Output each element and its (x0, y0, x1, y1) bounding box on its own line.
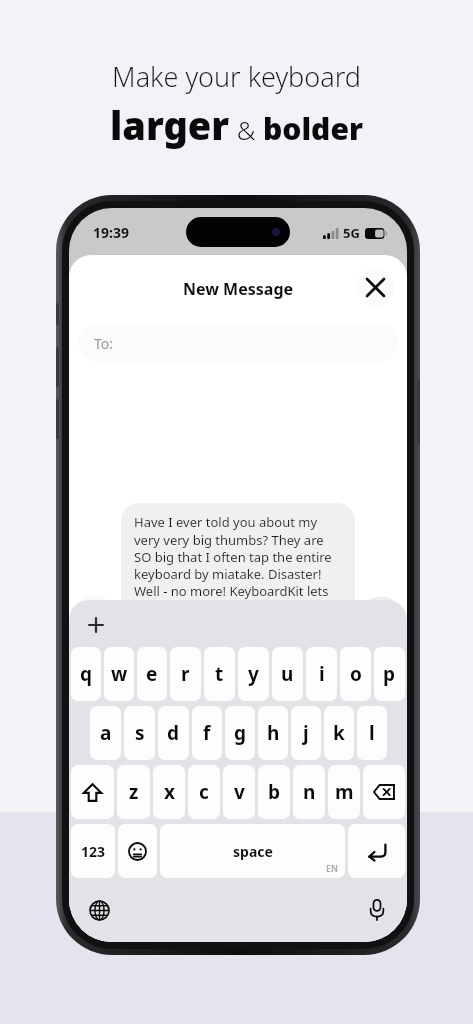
staticText: t (215, 661, 224, 687)
staticText: h (267, 720, 280, 746)
button[interactable]: h (258, 706, 288, 760)
staticText: q (80, 661, 93, 687)
button[interactable]: e (137, 647, 167, 701)
staticText: y (248, 661, 259, 687)
button[interactable]: t (204, 647, 235, 701)
button[interactable]: o (340, 647, 371, 701)
staticText: x (164, 779, 175, 805)
button[interactable]: Keyboard actions (81, 610, 111, 640)
staticText: bolder (263, 108, 363, 149)
button[interactable]: 123 (71, 824, 115, 878)
staticText: larger (110, 99, 230, 151)
staticText: p (383, 661, 396, 687)
staticText: 123 (81, 842, 106, 861)
button[interactable]: Add attachment (77, 593, 111, 627)
button[interactable]: x (153, 765, 185, 819)
button[interactable]: Send (363, 597, 399, 627)
staticText: To: (94, 334, 114, 353)
button[interactable]: Change keyboard (83, 894, 115, 926)
button[interactable]: To: (78, 324, 398, 362)
button[interactable]: Return (348, 824, 405, 878)
button[interactable]: m (328, 765, 360, 819)
staticText: g (234, 720, 247, 746)
button[interactable]: l (357, 706, 387, 760)
staticText: a (100, 720, 112, 746)
staticText: o (350, 661, 362, 687)
button[interactable]: i (306, 647, 337, 701)
staticText: Make your keyboard (112, 58, 361, 95)
button[interactable]: q (71, 647, 101, 701)
staticText: EN (326, 862, 338, 874)
staticText: c (199, 779, 209, 805)
button[interactable]: w (104, 647, 134, 701)
button[interactable]: f (192, 706, 222, 760)
staticText: e (146, 661, 158, 687)
button[interactable]: r (170, 647, 201, 701)
button[interactable]: d (158, 706, 189, 760)
button[interactable]: Shift (71, 765, 114, 819)
button[interactable]: v (223, 765, 255, 819)
staticText: v (234, 779, 245, 805)
staticText: New Message (183, 278, 294, 300)
staticText: m (335, 779, 354, 805)
staticText: b (268, 779, 281, 805)
button[interactable]: Have I ever told you about my very very … (121, 503, 355, 627)
button[interactable]: Emoji (118, 824, 157, 878)
button[interactable]: a (90, 706, 121, 760)
button[interactable]: k (324, 706, 354, 760)
staticText: n (303, 779, 316, 805)
button[interactable]: n (293, 765, 325, 819)
button[interactable]: p (374, 647, 405, 701)
button[interactable]: c (188, 765, 220, 819)
staticText: s (135, 720, 145, 746)
button[interactable]: Backspace (363, 765, 405, 819)
staticText: r (181, 661, 190, 687)
button[interactable]: b (258, 765, 290, 819)
button[interactable]: j (291, 706, 321, 760)
staticText: space (233, 842, 273, 861)
staticText: & (230, 112, 263, 147)
button[interactable]: y (238, 647, 269, 701)
staticText: 5G (343, 224, 360, 242)
staticText: d (167, 720, 180, 746)
staticText: z (129, 779, 139, 805)
button[interactable]: u (272, 647, 303, 701)
button[interactable]: z (117, 765, 150, 819)
staticText: i (319, 661, 325, 687)
staticText: k (333, 720, 345, 746)
staticText: 19:39 (93, 223, 129, 242)
staticText: l (369, 720, 375, 746)
staticText: Have I ever told you about my very very … (134, 513, 342, 617)
button[interactable]: Close (356, 268, 394, 306)
button[interactable]: s (124, 706, 155, 760)
button[interactable]: g (225, 706, 255, 760)
staticText: w (111, 661, 128, 687)
staticText: u (281, 661, 294, 687)
button[interactable]: space (160, 824, 345, 878)
staticText: f (203, 720, 211, 746)
staticText: j (303, 720, 309, 746)
button[interactable]: Dictate (361, 894, 393, 926)
